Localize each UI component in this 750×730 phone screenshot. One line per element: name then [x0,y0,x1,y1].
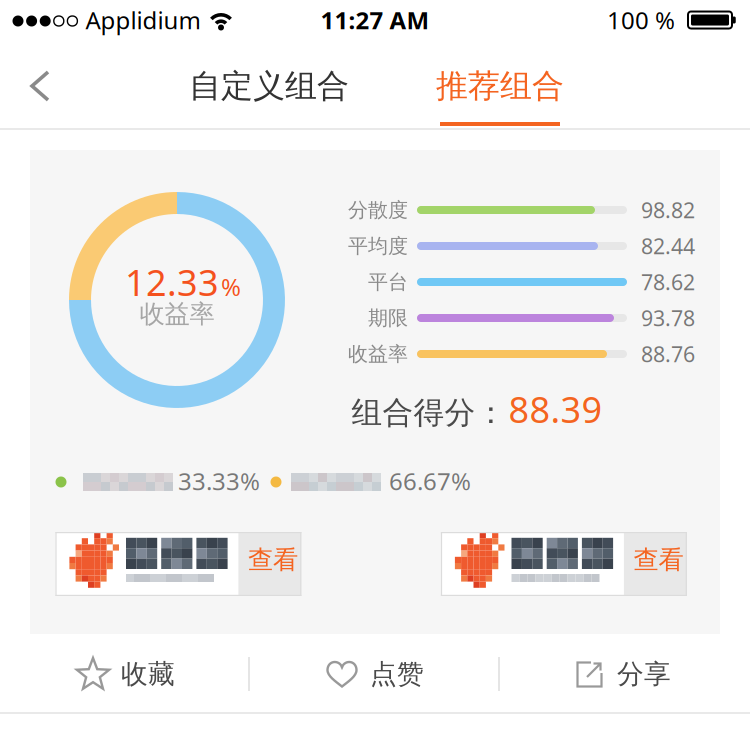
staticText: 88.76 [641,340,695,368]
button[interactable]: Back [18,68,62,104]
staticText: 推荐组合 [436,66,564,106]
staticText: 平台 [368,270,408,294]
staticText: 点赞 [370,658,424,690]
staticText: % [221,271,241,303]
button[interactable]: 收藏 [5,634,245,714]
staticText: 11:27 AM [320,4,429,36]
staticText: 查看 [634,544,684,575]
staticText: 查看 [248,544,298,575]
staticText: 88.39 [508,385,602,433]
staticText: 33.33% [178,465,260,497]
button[interactable]: 点赞 [255,634,495,714]
staticText: Applidium [85,4,200,36]
staticText: 78.62 [641,268,695,296]
staticText: 分散度 [348,198,408,222]
staticText: 分享 [617,658,671,690]
staticText: 收藏 [121,658,175,690]
staticText: 93.78 [641,304,695,332]
staticText: 12.33 [125,258,219,306]
staticText: 平均度 [348,234,408,258]
staticText: 组合得分： [351,394,506,432]
button[interactable]: 推荐组合 [420,56,580,116]
staticText: 100 % [607,4,675,36]
staticText: 收益率 [139,298,214,329]
staticText: 66.67% [389,465,471,497]
button[interactable]: 自定义组合 [159,56,379,116]
staticText: 收益率 [348,342,408,366]
staticText: 自定义组合 [189,66,349,106]
button[interactable]: 查看 [57,532,303,596]
button[interactable]: 分享 [503,634,743,714]
staticText: 82.44 [641,232,695,260]
staticText: 98.82 [641,196,695,224]
button[interactable]: 查看 [442,532,688,596]
staticText: 期限 [368,306,408,330]
